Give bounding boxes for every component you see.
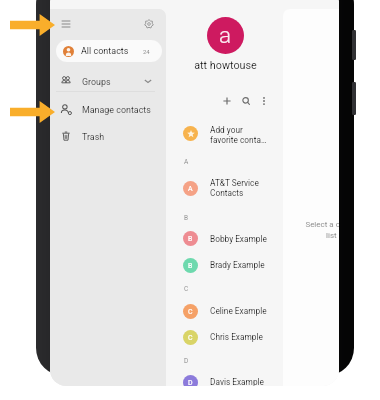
staticText: Trash — [82, 132, 105, 142]
staticText: Groups — [82, 77, 111, 87]
staticText: Davis Example — [210, 377, 264, 386]
button[interactable] — [166, 369, 283, 386]
staticText: B — [188, 235, 193, 243]
staticText: C — [188, 308, 193, 316]
button[interactable]: a — [207, 17, 244, 54]
staticText: B — [184, 214, 189, 222]
staticText: list a — [326, 231, 339, 240]
staticText: Celine Example — [210, 306, 267, 316]
staticText: D — [188, 379, 193, 386]
button[interactable] — [166, 298, 283, 324]
staticText: A — [184, 158, 189, 166]
staticText: D — [184, 357, 189, 365]
staticText: A — [188, 185, 193, 193]
staticText: favorite conta… — [210, 135, 267, 145]
staticText: All contacts — [81, 46, 129, 57]
button[interactable]: Open navigation menu — [57, 15, 75, 33]
staticText: Select a contact — [305, 220, 339, 229]
staticText: C — [184, 285, 189, 293]
button[interactable] — [56, 99, 162, 121]
button[interactable]: Search — [239, 94, 253, 108]
button[interactable] — [166, 253, 283, 279]
button[interactable]: More options — [257, 94, 271, 108]
staticText: C — [188, 334, 193, 342]
staticText: 24 — [143, 48, 150, 55]
staticText: Contacts — [210, 188, 244, 198]
staticText: a — [219, 22, 232, 48]
button[interactable]: Settings — [140, 15, 158, 33]
staticText: Chris Example — [210, 332, 263, 342]
button[interactable] — [56, 125, 162, 147]
staticText: Add your — [210, 125, 243, 135]
button[interactable]: All contacts — [56, 40, 162, 62]
button[interactable] — [166, 175, 283, 201]
button[interactable] — [166, 226, 283, 252]
staticText: B — [188, 262, 193, 270]
button[interactable] — [166, 324, 283, 350]
staticText: Bobby Example — [210, 234, 267, 244]
button[interactable] — [56, 70, 162, 92]
staticText: att howtouse — [194, 59, 257, 72]
staticText: Brady Example — [210, 260, 265, 270]
staticText: Manage contacts — [82, 105, 151, 115]
staticText: AT&T Service — [210, 178, 259, 188]
button[interactable]: Add contact — [220, 94, 234, 108]
button[interactable] — [166, 120, 283, 148]
